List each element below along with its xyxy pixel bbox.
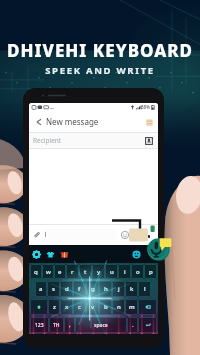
button[interactable]: Settings — [32, 250, 41, 259]
button[interactable]: l — [138, 281, 151, 297]
staticText: SPEEK AND WRITE — [45, 64, 155, 77]
button[interactable]: w — [42, 264, 54, 279]
staticText: g — [91, 285, 95, 293]
button[interactable]: i — [118, 264, 131, 279]
staticText: e — [58, 268, 62, 276]
button[interactable]: More options — [143, 116, 155, 128]
staticText: j — [118, 285, 120, 293]
button[interactable]: k — [125, 281, 138, 297]
button[interactable]: Shift — [30, 299, 48, 315]
button[interactable]: z — [48, 299, 60, 315]
staticText: q — [34, 268, 38, 276]
button[interactable]: Backspace — [138, 299, 157, 315]
button[interactable]: y — [92, 264, 105, 279]
staticText: i — [124, 268, 126, 276]
button[interactable]: r — [66, 264, 79, 279]
staticText: u — [110, 268, 114, 276]
button[interactable]: a — [35, 281, 47, 297]
button[interactable]: x — [60, 299, 73, 315]
button[interactable]: f — [73, 281, 86, 297]
button[interactable]: o — [131, 264, 144, 279]
staticText: TH — [53, 322, 60, 329]
button[interactable]: Gifts — [60, 250, 69, 259]
staticText: w — [46, 268, 51, 276]
button[interactable]: s — [47, 281, 60, 297]
staticText: n — [117, 303, 121, 311]
staticText: y — [97, 268, 101, 276]
staticText: o — [136, 268, 140, 276]
button[interactable]: m — [125, 299, 138, 315]
button[interactable]: d — [60, 281, 73, 297]
button[interactable] — [42, 229, 117, 240]
button[interactable]: Emoji — [119, 229, 130, 240]
button[interactable]: Themes — [46, 250, 55, 259]
staticText: Recipient — [33, 136, 62, 145]
button[interactable]: Attach file — [31, 229, 42, 240]
staticText: b — [104, 303, 108, 311]
staticText: v — [91, 303, 95, 311]
button[interactable]: e — [54, 264, 66, 279]
staticText: 123 — [35, 322, 44, 329]
button[interactable]: c — [73, 299, 86, 315]
button[interactable]: Emoji keyboard — [132, 250, 141, 259]
button[interactable]: space — [75, 317, 127, 333]
staticText: . — [132, 321, 134, 329]
button[interactable]: Enter — [138, 317, 157, 333]
staticText: p — [149, 268, 153, 276]
button[interactable]: h — [99, 281, 112, 297]
staticText: , — [69, 321, 71, 329]
staticText: l — [144, 285, 146, 293]
button[interactable]: q — [30, 264, 42, 279]
button[interactable]: , — [64, 317, 75, 333]
staticText: h — [104, 285, 108, 293]
staticText: r — [71, 268, 74, 276]
button[interactable]: . — [127, 317, 138, 333]
staticText: t — [84, 268, 87, 276]
button[interactable]: 123 — [30, 317, 49, 333]
staticText: d — [65, 285, 69, 293]
staticText: 38% — [141, 104, 150, 110]
staticText: k — [130, 285, 134, 293]
staticText: DHIVEHI KEYBOARD — [7, 39, 193, 62]
button[interactable]: TH — [49, 317, 64, 333]
button[interactable]: u — [105, 264, 118, 279]
staticText: f — [78, 285, 81, 293]
staticText: x — [65, 303, 69, 311]
button[interactable]: Add contact — [143, 135, 154, 146]
staticText: c — [78, 303, 81, 311]
button[interactable]: g — [86, 281, 99, 297]
button[interactable]: j — [112, 281, 125, 297]
staticText: m — [129, 303, 135, 311]
button[interactable]: n — [112, 299, 125, 315]
staticText: a — [39, 285, 43, 293]
staticText: space — [94, 322, 108, 329]
staticText: z — [53, 303, 56, 311]
button[interactable]: Back — [32, 116, 43, 127]
button[interactable]: b — [99, 299, 112, 315]
button[interactable]: v — [86, 299, 99, 315]
button[interactable]: t — [79, 264, 92, 279]
button[interactable]: p — [144, 264, 157, 279]
staticText: s — [52, 285, 55, 293]
staticText: New message — [46, 116, 99, 127]
